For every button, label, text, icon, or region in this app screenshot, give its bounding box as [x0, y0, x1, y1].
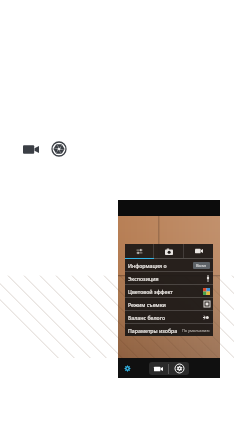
staticText: Информация о	[128, 262, 192, 269]
button[interactable]: Settings tab	[125, 244, 153, 258]
button[interactable]: Camera shutter	[50, 140, 68, 158]
staticText: Экспозиция	[128, 275, 205, 282]
button[interactable]: Video camera	[22, 142, 40, 156]
button[interactable]: Режим съемки	[125, 298, 213, 310]
button[interactable]: Баланс белого	[125, 311, 213, 323]
button[interactable]: Параметры изобра	[125, 324, 213, 336]
staticText: Баланс белого	[128, 314, 202, 321]
button[interactable]: Информация о	[125, 259, 213, 271]
button[interactable]: Экспозиция	[125, 272, 213, 284]
button[interactable]: Take photo	[169, 362, 189, 375]
button[interactable]: Record video	[149, 362, 168, 375]
staticText: Параметры изобра	[128, 327, 181, 334]
staticText: Режим съемки	[128, 301, 203, 308]
staticText: По умолчанию	[182, 328, 210, 333]
button[interactable]: Video settings tab	[184, 244, 213, 258]
button[interactable]: Цветовой эффект	[125, 285, 213, 297]
staticText: Выкл	[196, 263, 207, 268]
staticText: Цветовой эффект	[128, 288, 202, 295]
button[interactable]: Settings	[122, 363, 132, 373]
button[interactable]: Photo settings tab	[154, 244, 183, 258]
